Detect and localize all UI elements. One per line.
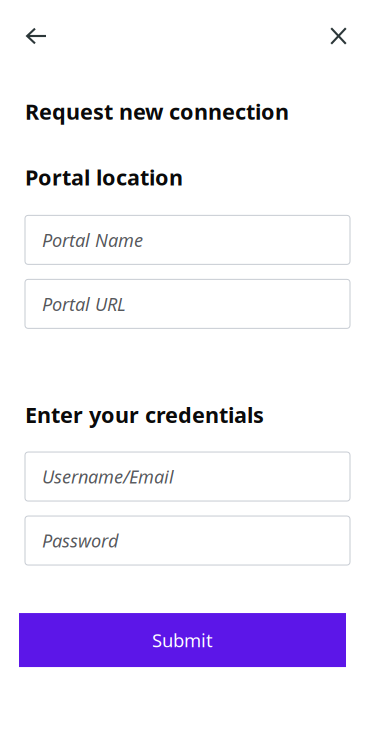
- button[interactable]: Back: [0, 16, 61, 55]
- button[interactable]: Portal Name: [25, 215, 350, 264]
- staticText: Portal Name: [42, 228, 143, 252]
- staticText: Password: [42, 528, 118, 553]
- staticText: Portal URL: [42, 292, 126, 316]
- staticText: Portal location: [25, 163, 183, 191]
- button[interactable]: Username/Email: [25, 452, 350, 501]
- staticText: Request new connection: [25, 97, 289, 126]
- staticText: Username/Email: [42, 464, 174, 489]
- button[interactable]: Submit: [19, 613, 346, 667]
- staticText: Enter your credentials: [25, 400, 264, 429]
- button[interactable]: Password: [25, 516, 350, 565]
- staticText: Submit: [152, 628, 213, 652]
- button[interactable]: Portal URL: [25, 279, 350, 328]
- button[interactable]: Close: [316, 16, 375, 56]
